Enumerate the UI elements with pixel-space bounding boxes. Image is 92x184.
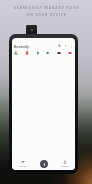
button[interactable]: Recent xyxy=(12,160,33,168)
button[interactable]: Grid view xyxy=(58,44,62,48)
button[interactable] xyxy=(25,51,29,55)
button[interactable] xyxy=(14,51,18,55)
staticText: Recent xyxy=(19,165,27,168)
button[interactable] xyxy=(46,51,50,55)
button[interactable]: New xyxy=(40,160,48,168)
staticText: Browse xyxy=(61,165,69,168)
button[interactable]: Recently xyxy=(14,44,30,49)
button[interactable] xyxy=(36,51,40,55)
staticText: ON YOUR DEVICE xyxy=(26,12,67,17)
button[interactable] xyxy=(68,51,72,55)
button[interactable] xyxy=(57,51,61,55)
button[interactable]: Browse xyxy=(54,160,75,168)
button[interactable]: Sort xyxy=(64,44,68,48)
button[interactable]: More options xyxy=(70,45,73,48)
staticText: SEAMLESSLY MANAGE FILES xyxy=(14,5,79,10)
